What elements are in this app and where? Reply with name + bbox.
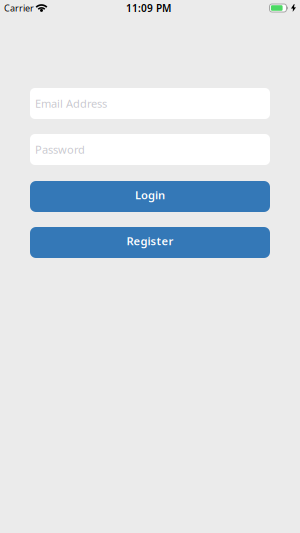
staticText: Email Address xyxy=(30,88,181,118)
staticText: Email Address xyxy=(35,96,107,111)
button[interactable]: Register xyxy=(30,227,270,258)
staticText: Password xyxy=(35,142,85,157)
textField[interactable]: Password xyxy=(30,134,270,164)
button[interactable]: Login xyxy=(30,181,270,212)
staticText: 11:09 PM xyxy=(126,1,171,15)
staticText: Login xyxy=(135,187,165,203)
staticText: Password xyxy=(30,134,134,164)
staticText: Register xyxy=(126,233,173,249)
textField[interactable]: Email Address xyxy=(30,88,270,118)
staticText: Carrier xyxy=(4,2,34,14)
